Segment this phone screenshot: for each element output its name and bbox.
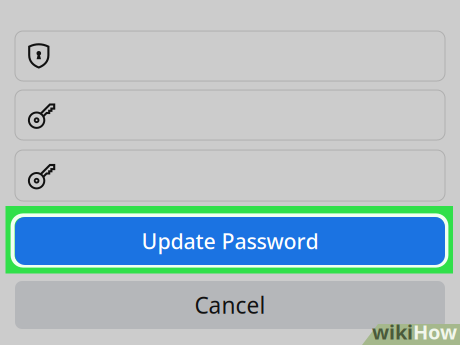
staticText: How (413, 318, 457, 345)
button[interactable]: Confirm new password (15, 150, 445, 201)
button[interactable]: Cancel (15, 281, 445, 329)
staticText: wiki (372, 318, 413, 345)
button[interactable]: New password (15, 90, 445, 140)
staticText: Cancel (194, 290, 265, 320)
button[interactable]: Current password (15, 31, 445, 81)
staticText: Update Password (141, 227, 318, 255)
button[interactable]: Update Password (15, 217, 445, 265)
